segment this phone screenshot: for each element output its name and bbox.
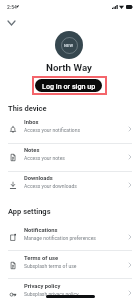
staticText: 2:54 [7, 4, 17, 10]
staticText: Privacy policy [24, 283, 61, 290]
staticText: Notifications [24, 227, 58, 234]
button[interactable]: Log in or sign up [35, 79, 102, 92]
staticText: App settings [8, 207, 51, 216]
staticText: Access your notifications [24, 127, 81, 133]
button[interactable]: Terms of use [0, 248, 139, 276]
staticText: Subsplash privacy policy [24, 291, 79, 297]
button[interactable]: Notifications [0, 220, 139, 248]
staticText: This device [8, 104, 47, 113]
button[interactable]: Privacy policy [0, 276, 139, 300]
button[interactable]: Downloads [0, 168, 139, 196]
staticText: Manage notification preferences [24, 235, 96, 241]
button[interactable]: Notes [0, 140, 139, 168]
staticText: Inbox [24, 119, 39, 126]
staticText: Notes [24, 147, 40, 154]
staticText: Log in or sign up [42, 82, 96, 90]
staticText: NEW [64, 43, 74, 48]
staticText: Terms of use [24, 255, 59, 262]
staticText: North Way [46, 62, 93, 73]
staticText: Downloads [24, 175, 53, 182]
staticText: Subsplash terms of use [24, 263, 77, 269]
button[interactable]: Inbox [0, 112, 139, 140]
button[interactable]: Collapse [3, 14, 20, 31]
staticText: Access your notes [24, 155, 65, 161]
staticText: Access your downloads [24, 183, 77, 189]
button[interactable]: Profile [55, 31, 83, 59]
